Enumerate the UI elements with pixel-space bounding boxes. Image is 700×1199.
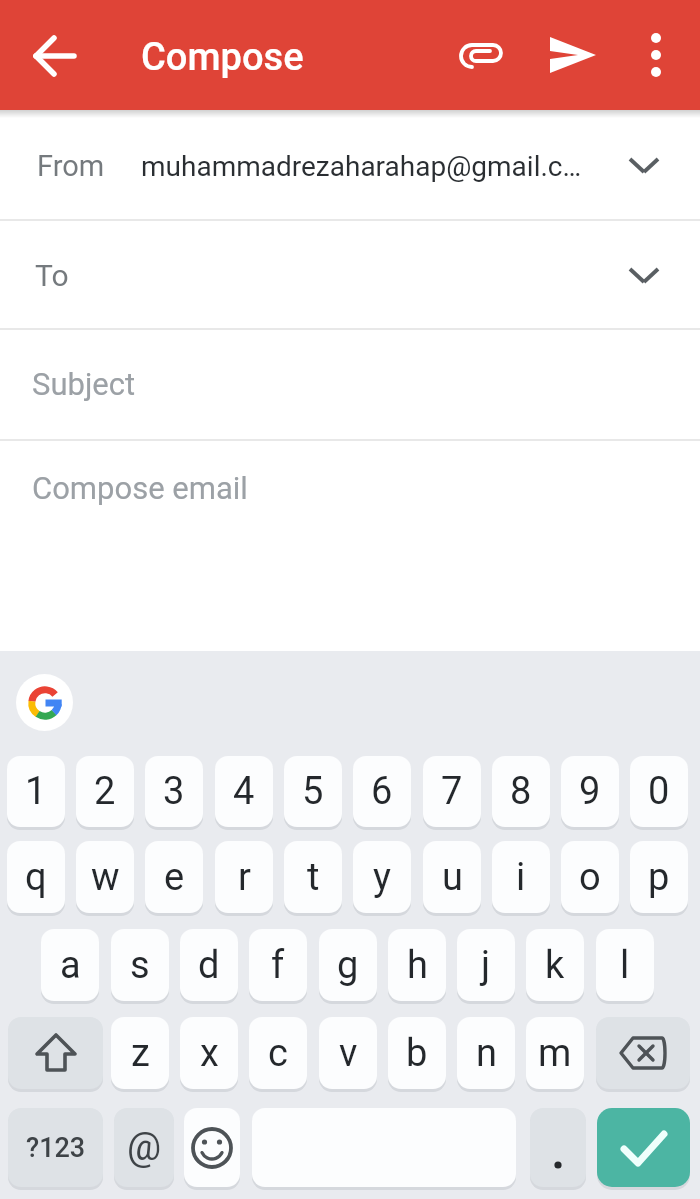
button[interactable]: 2 xyxy=(76,756,134,827)
button[interactable]: 0 xyxy=(630,756,688,827)
staticText: g xyxy=(337,943,359,988)
staticText: b xyxy=(406,1031,428,1076)
staticText: m xyxy=(538,1031,572,1076)
staticText: e xyxy=(164,855,185,900)
button[interactable]: 4 xyxy=(215,756,273,827)
button[interactable]: o xyxy=(561,841,619,913)
button[interactable] xyxy=(20,20,90,90)
button[interactable]: u xyxy=(423,841,481,913)
button[interactable] xyxy=(0,330,700,439)
staticText: p xyxy=(648,855,670,900)
button[interactable] xyxy=(530,1108,586,1187)
staticText: 3 xyxy=(163,769,185,814)
button[interactable]: g xyxy=(319,929,377,1001)
button[interactable]: i xyxy=(492,841,550,913)
staticText: 4 xyxy=(233,769,255,814)
staticText: n xyxy=(476,1031,497,1076)
staticText: l xyxy=(620,943,630,988)
staticText: 6 xyxy=(371,769,393,814)
button[interactable]: ?123 xyxy=(8,1108,103,1187)
staticText: 7 xyxy=(441,769,463,814)
staticText: s xyxy=(130,943,150,988)
button[interactable]: v xyxy=(319,1017,377,1089)
staticText: i xyxy=(516,855,526,900)
button[interactable]: 5 xyxy=(284,756,342,827)
staticText: y xyxy=(373,855,391,900)
button[interactable]: a xyxy=(41,929,99,1001)
button[interactable]: h xyxy=(388,929,446,1001)
staticText: k xyxy=(545,943,565,988)
staticText: To xyxy=(35,258,69,293)
staticText: 2 xyxy=(94,769,116,814)
staticText: u xyxy=(442,855,463,900)
staticText: q xyxy=(25,855,47,900)
button[interactable] xyxy=(184,1108,240,1187)
button[interactable]: n xyxy=(457,1017,515,1089)
button[interactable]: x xyxy=(180,1017,238,1089)
staticText: muhammadrezaharahap@gmail.c… xyxy=(141,150,582,183)
staticText: Compose email xyxy=(32,470,248,506)
button[interactable]: t xyxy=(284,841,342,913)
staticText: j xyxy=(481,943,491,988)
staticText: 0 xyxy=(648,769,670,814)
staticText: c xyxy=(268,1031,288,1076)
button[interactable]: r xyxy=(215,841,273,913)
button[interactable]: 3 xyxy=(145,756,203,827)
staticText: d xyxy=(198,943,220,988)
button[interactable]: b xyxy=(388,1017,446,1089)
button[interactable] xyxy=(542,24,604,86)
button[interactable] xyxy=(8,1017,103,1089)
staticText: o xyxy=(579,855,601,900)
button[interactable]: y xyxy=(353,841,411,913)
staticText: r xyxy=(238,855,251,900)
button[interactable] xyxy=(0,221,700,328)
button[interactable]: d xyxy=(180,929,238,1001)
button[interactable]: m xyxy=(526,1017,584,1089)
button[interactable]: k xyxy=(526,929,584,1001)
staticText: 9 xyxy=(579,769,601,814)
button[interactable]: j xyxy=(457,929,515,1001)
staticText: x xyxy=(200,1031,219,1076)
staticText: Compose xyxy=(141,35,304,80)
button[interactable]: e xyxy=(145,841,203,913)
button[interactable]: @ xyxy=(114,1108,174,1187)
button[interactable]: s xyxy=(111,929,169,1001)
staticText: Subject xyxy=(32,366,136,402)
staticText: From xyxy=(37,149,105,183)
button[interactable]: 1 xyxy=(7,756,65,827)
staticText: ?123 xyxy=(26,1132,86,1164)
button[interactable]: 9 xyxy=(561,756,619,827)
staticText: @ xyxy=(127,1125,162,1170)
button[interactable]: q xyxy=(7,841,65,913)
button[interactable]: c xyxy=(249,1017,307,1089)
button[interactable]: l xyxy=(596,929,654,1001)
staticText: v xyxy=(339,1031,358,1076)
button[interactable] xyxy=(0,112,700,219)
staticText: t xyxy=(307,855,320,900)
button[interactable] xyxy=(597,1108,690,1187)
button[interactable]: f xyxy=(249,929,307,1001)
button[interactable] xyxy=(0,441,700,651)
button[interactable]: z xyxy=(111,1017,169,1089)
button[interactable]: 8 xyxy=(492,756,550,827)
staticText: a xyxy=(60,943,81,988)
button[interactable] xyxy=(16,674,73,731)
button[interactable] xyxy=(596,1017,690,1089)
button[interactable]: 7 xyxy=(423,756,481,827)
button[interactable] xyxy=(450,24,512,86)
staticText: 1 xyxy=(25,769,47,814)
staticText: 5 xyxy=(302,769,324,814)
button[interactable]: p xyxy=(630,841,688,913)
staticText: f xyxy=(271,943,285,988)
staticText: z xyxy=(131,1031,150,1076)
button[interactable]: w xyxy=(76,841,134,913)
staticText: w xyxy=(91,855,120,900)
staticText: 8 xyxy=(510,769,532,814)
staticText: h xyxy=(407,943,428,988)
button[interactable] xyxy=(626,20,686,80)
button[interactable]: 6 xyxy=(353,756,411,827)
